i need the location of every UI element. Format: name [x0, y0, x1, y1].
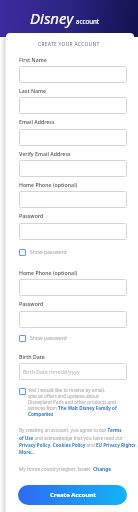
- button[interactable]: [19, 223, 127, 240]
- staticText: Verify Email Address: [19, 150, 71, 157]
- staticText: CREATE YOUR ACCOUNT: [38, 41, 100, 48]
- staticText: Password: [19, 212, 44, 219]
- button[interactable]: [19, 160, 127, 177]
- staticText: Disney: [30, 8, 74, 28]
- button[interactable]: [19, 66, 127, 83]
- button[interactable]: [19, 279, 127, 296]
- button[interactable]: Show password: [19, 335, 79, 342]
- staticText: Birth Date mm/dd/yyyy: [23, 368, 80, 375]
- button[interactable]: Marketing opt in: [19, 388, 26, 395]
- button[interactable]: Change: [93, 466, 112, 473]
- staticText: Create Account: [50, 491, 96, 499]
- button[interactable]: Show password: [19, 249, 79, 256]
- staticText: Show password: [30, 335, 67, 342]
- staticText: By creating an account, you agree to our…: [19, 427, 137, 455]
- button[interactable]: [19, 191, 127, 208]
- staticText: Home Phone (optional): [19, 181, 78, 188]
- button[interactable]: Disney: [30, 8, 100, 28]
- staticText: Show password: [30, 249, 67, 256]
- button[interactable]: Birth Date mm/dd/yyyy: [19, 363, 127, 380]
- staticText: Yes! I would like to receive by email, s…: [28, 387, 117, 417]
- staticText: Birth Date: [19, 353, 45, 360]
- staticText: account: [76, 17, 100, 25]
- staticText: First Name: [19, 56, 47, 63]
- staticText: Last Name: [19, 87, 47, 94]
- button[interactable]: [19, 311, 127, 328]
- staticText: Email Address: [19, 118, 55, 125]
- staticText: My home country/region: Israel: [19, 466, 93, 473]
- button[interactable]: [19, 129, 127, 146]
- staticText: Home Phone (optional): [19, 269, 78, 276]
- button[interactable]: [19, 97, 127, 114]
- button[interactable]: Create Account: [18, 485, 127, 505]
- staticText: Password: [19, 300, 44, 307]
